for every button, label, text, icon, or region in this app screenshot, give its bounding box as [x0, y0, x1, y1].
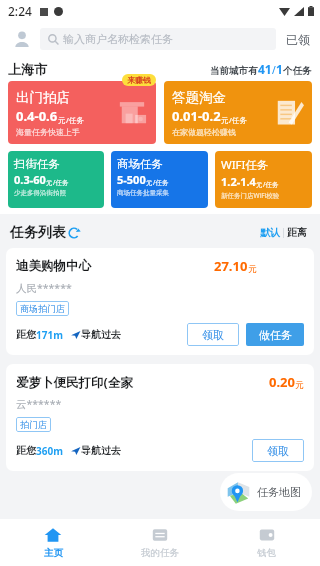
- staticText: 0.3-60: [14, 172, 46, 187]
- staticText: 已领: [286, 32, 310, 47]
- button[interactable]: 领取: [187, 323, 239, 346]
- button[interactable]: 默认: [257, 223, 283, 242]
- button[interactable]: 迪美购物中心: [6, 248, 314, 355]
- staticText: 2:24: [8, 3, 32, 19]
- staticText: 扫街任务: [14, 157, 60, 171]
- staticText: 导航过去: [81, 328, 121, 341]
- staticText: WIFI任务: [221, 157, 269, 173]
- button[interactable]: Profile: [8, 25, 36, 53]
- staticText: 少走多得沿街拍照: [14, 189, 66, 197]
- staticText: /任务: [229, 115, 247, 125]
- staticText: 做任务: [259, 328, 292, 342]
- button[interactable]: 商场任务: [111, 151, 208, 208]
- staticText: 商场拍门店: [20, 303, 65, 314]
- staticText: 来赚钱: [127, 75, 151, 85]
- staticText: 云******: [16, 397, 62, 411]
- staticText: 0.4-0.6: [16, 107, 58, 125]
- button[interactable]: WIFI任务: [215, 151, 312, 208]
- button[interactable]: Refresh: [67, 226, 81, 240]
- staticText: 360m: [36, 444, 63, 458]
- button[interactable]: 商场拍门店: [16, 301, 69, 316]
- staticText: 元: [58, 116, 66, 125]
- button[interactable]: 主页: [0, 519, 106, 566]
- staticText: 商场任务: [117, 157, 163, 171]
- staticText: /任务: [66, 115, 84, 125]
- button[interactable]: 钱包: [213, 519, 320, 566]
- button[interactable]: 导航过去: [70, 326, 121, 343]
- staticText: 新任务门店WiFi校验: [221, 191, 280, 200]
- staticText: 元: [46, 179, 53, 187]
- staticText: 个任务: [283, 65, 312, 77]
- button[interactable]: 任务地图: [220, 473, 312, 511]
- staticText: /任务: [53, 178, 69, 187]
- staticText: 出门拍店: [16, 89, 70, 106]
- button[interactable]: 拍门店: [16, 417, 51, 432]
- staticText: 人民******: [16, 281, 72, 295]
- button[interactable]: 爱萝卜便民打印(全家1218-云南中路店): [6, 364, 314, 471]
- staticText: 导航过去: [81, 444, 121, 457]
- button[interactable]: 导航过去: [70, 442, 121, 459]
- staticText: /: [272, 63, 276, 77]
- staticText: 1: [276, 61, 283, 77]
- staticText: 41: [258, 61, 272, 77]
- staticText: 输入商户名称检索任务: [63, 32, 173, 46]
- staticText: 商场任务批量采集: [117, 189, 169, 197]
- button[interactable]: 答题淘金: [164, 81, 312, 144]
- button[interactable]: 做任务: [246, 323, 304, 346]
- staticText: 元: [146, 179, 153, 187]
- staticText: 主页: [44, 547, 63, 559]
- staticText: /任务: [263, 180, 279, 189]
- staticText: 海量任务快速上手: [16, 127, 80, 137]
- staticText: 迪美购物中心: [16, 258, 91, 274]
- button[interactable]: 扫街任务: [8, 151, 104, 208]
- staticText: 元: [248, 264, 257, 275]
- staticText: 元: [295, 380, 304, 391]
- staticText: 我的任务: [141, 547, 179, 559]
- staticText: 元: [221, 116, 229, 125]
- button[interactable]: 出门拍店: [8, 81, 156, 144]
- staticText: 距您: [16, 328, 36, 341]
- staticText: 上海市: [8, 61, 47, 77]
- staticText: 任务地图: [257, 485, 301, 499]
- staticText: 27.10: [214, 257, 248, 275]
- staticText: 距离: [287, 226, 307, 239]
- staticText: 领取: [202, 328, 224, 342]
- staticText: 在家做题轻松赚钱: [172, 127, 236, 137]
- staticText: 0.20: [269, 373, 295, 391]
- staticText: 领取: [267, 444, 289, 458]
- staticText: 拍门店: [20, 419, 47, 430]
- button[interactable]: 我的任务: [106, 519, 213, 566]
- staticText: 元: [256, 181, 263, 189]
- button[interactable]: 输入商户名称检索任务: [40, 28, 276, 50]
- staticText: 171m: [36, 328, 63, 342]
- staticText: 默认: [260, 226, 280, 239]
- button[interactable]: 已领: [284, 28, 312, 51]
- staticText: 爱萝卜便民打印(全家1218-云南中路店): [16, 374, 142, 391]
- button[interactable]: 领取: [252, 439, 304, 462]
- staticText: 当前城市有: [210, 65, 258, 77]
- staticText: 0.01-0.2: [172, 107, 221, 125]
- staticText: 5-500: [117, 172, 146, 187]
- staticText: 1.2-1.4: [221, 174, 256, 189]
- staticText: /任务: [153, 178, 169, 187]
- staticText: 距您: [16, 444, 36, 457]
- button[interactable]: 距离: [284, 223, 310, 242]
- staticText: 答题淘金: [172, 89, 226, 106]
- staticText: 任务列表: [10, 224, 66, 242]
- staticText: 钱包: [257, 547, 276, 559]
